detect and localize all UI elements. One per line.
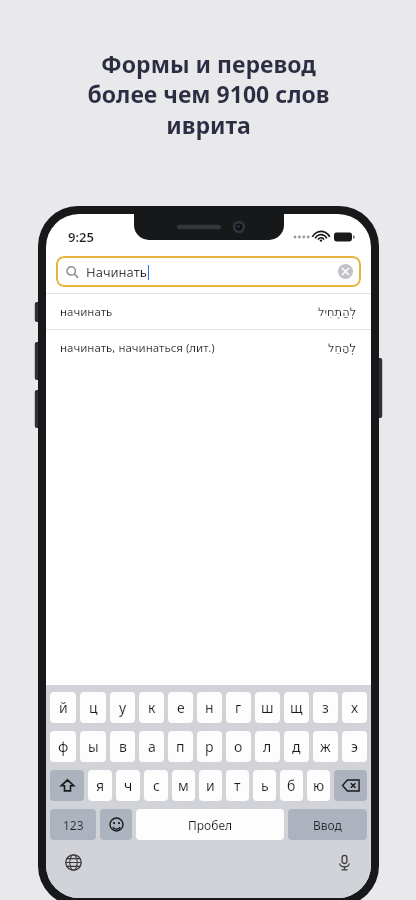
button[interactable]: у	[110, 692, 135, 723]
staticText: й	[59, 698, 68, 717]
staticText: Формы и перевод более чем 9100 слов иври…	[87, 48, 330, 141]
button[interactable]: с	[144, 770, 168, 801]
staticText: ы	[88, 737, 99, 756]
staticText: и	[206, 776, 215, 795]
button[interactable]: л	[255, 731, 280, 762]
staticText: м	[178, 776, 189, 795]
staticText: н	[205, 698, 214, 717]
staticText: о	[234, 737, 243, 756]
staticText: я	[96, 776, 105, 795]
staticText: у	[119, 698, 127, 717]
staticText: לְהָחֵל	[328, 341, 357, 354]
button[interactable]: и	[199, 770, 222, 801]
button[interactable]: к	[139, 692, 164, 723]
button[interactable]: ж	[313, 731, 338, 762]
button[interactable]: ч	[116, 770, 140, 801]
button[interactable]: о	[226, 731, 251, 762]
staticText: г	[235, 698, 242, 717]
button[interactable]: Ввод	[288, 809, 367, 840]
staticText: п	[176, 737, 185, 756]
button[interactable]: ц	[80, 692, 106, 723]
button[interactable]: начинать, начинаться (лит.)	[46, 330, 371, 365]
staticText: 9:25	[68, 228, 94, 246]
button[interactable]: Очистить	[338, 264, 353, 279]
button[interactable]: ш	[255, 692, 280, 723]
button[interactable]: Эмодзи	[100, 809, 132, 840]
button[interactable]: ь	[253, 770, 276, 801]
staticText: е	[177, 698, 185, 717]
staticText: э	[351, 737, 358, 756]
staticText: л	[263, 737, 272, 756]
staticText: ж	[320, 737, 331, 756]
staticText: начинать	[60, 304, 113, 320]
button[interactable]: начинать	[46, 294, 371, 329]
button[interactable]: а	[139, 731, 164, 762]
button[interactable]: д	[284, 731, 309, 762]
button[interactable]: м	[172, 770, 195, 801]
button[interactable]: Сменить язык	[60, 849, 86, 875]
staticText: Ввод	[313, 817, 342, 833]
button[interactable]: э	[342, 731, 367, 762]
button[interactable]: н	[197, 692, 222, 723]
staticText: а	[148, 737, 156, 756]
button[interactable]: Диктовка	[331, 849, 357, 875]
staticText: ш	[261, 698, 274, 717]
button[interactable]: в	[110, 731, 135, 762]
staticText: д	[292, 737, 301, 756]
button[interactable]: ф	[50, 731, 76, 762]
staticText: לְהַתְחִיל	[318, 305, 357, 318]
button[interactable]: з	[313, 692, 338, 723]
button[interactable]: п	[168, 731, 193, 762]
button[interactable]: Удалить	[334, 770, 367, 801]
button[interactable]: Пробел	[136, 809, 284, 840]
button[interactable]: Начинать	[56, 256, 361, 287]
button[interactable]: ы	[80, 731, 106, 762]
staticText: щ	[290, 698, 303, 717]
staticText: ф	[58, 737, 69, 756]
staticText: Начинать	[86, 263, 147, 281]
staticText: х	[351, 698, 359, 717]
staticText: з	[322, 698, 329, 717]
staticText: б	[287, 776, 296, 795]
staticText: Пробел	[188, 817, 233, 833]
button[interactable]: щ	[284, 692, 309, 723]
button[interactable]: Shift	[50, 770, 84, 801]
staticText: ь	[261, 776, 269, 795]
staticText: 123	[63, 817, 84, 833]
button[interactable]: й	[50, 692, 76, 723]
button[interactable]: я	[88, 770, 112, 801]
staticText: ц	[89, 698, 98, 717]
button[interactable]: ю	[307, 770, 330, 801]
staticText: к	[148, 698, 156, 717]
staticText: в	[119, 737, 127, 756]
button[interactable]: 123	[50, 809, 96, 840]
button[interactable]: б	[280, 770, 303, 801]
staticText: ч	[124, 776, 133, 795]
staticText: начинать, начинаться (лит.)	[60, 340, 215, 356]
button[interactable]: е	[168, 692, 193, 723]
button[interactable]: р	[197, 731, 222, 762]
staticText: р	[205, 737, 214, 756]
button[interactable]: х	[342, 692, 367, 723]
staticText: с	[153, 776, 160, 795]
button[interactable]: г	[226, 692, 251, 723]
staticText: ю	[313, 776, 325, 795]
button[interactable]: т	[226, 770, 249, 801]
staticText: т	[234, 776, 241, 795]
